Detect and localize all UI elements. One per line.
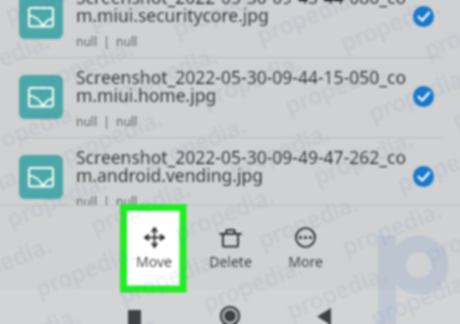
button[interactable]: Home: [210, 289, 250, 324]
button[interactable]: Move: [120, 205, 188, 289]
staticText: null | null: [76, 113, 138, 129]
staticText: m.miui.securitycore.jpg: [76, 3, 269, 27]
staticText: m.android.vending.jpg: [76, 163, 264, 187]
button[interactable]: Recents: [120, 289, 160, 324]
button[interactable]: Delete: [196, 205, 264, 289]
staticText: Screenshot_2022-05-30-09-44-15-050_co: [76, 65, 407, 89]
other: Selected: [413, 166, 434, 187]
button[interactable]: Back: [304, 289, 344, 324]
button[interactable]: Screenshot_2022-05-30-09-49-47-262_co: [0, 137, 460, 217]
staticText: Screenshot_2022-05-30-09-49-47-262_co: [76, 145, 407, 169]
other: Move: [144, 227, 165, 248]
button[interactable]: More: [271, 205, 339, 289]
staticText: m.miui.home.jpg: [76, 83, 217, 107]
other: Selected: [413, 6, 434, 27]
staticText: null | null: [76, 193, 138, 209]
staticText: Screenshot_2022-05-30-09-43-44-080_co: [76, 0, 407, 9]
staticText: More: [288, 252, 323, 271]
staticText: Delete: [209, 252, 252, 271]
button[interactable]: Screenshot_2022-05-30-09-44-15-050_co: [0, 57, 460, 137]
button[interactable]: Screenshot_2022-05-30-09-43-44-080_co: [0, 0, 460, 57]
staticText: Move: [136, 252, 172, 271]
other: More: [295, 227, 316, 248]
other: Selected: [413, 86, 434, 107]
other: Delete: [220, 227, 241, 248]
staticText: null | null: [76, 33, 138, 49]
